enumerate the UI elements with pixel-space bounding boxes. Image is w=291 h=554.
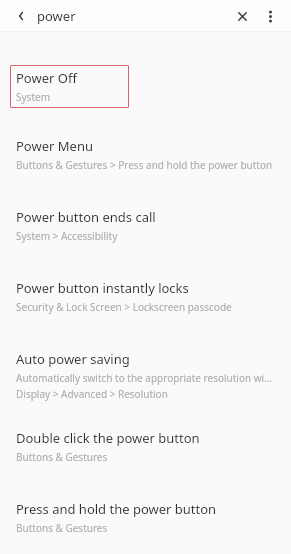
button[interactable]: Power button instantly locks [0,275,291,318]
staticText: Buttons & Gestures [16,450,108,464]
staticText: Power button instantly locks [16,279,189,297]
staticText: Double click the power button [16,429,200,447]
staticText: Auto power saving [16,350,130,368]
button[interactable]: Back [9,0,32,32]
staticText: Automatically switch to the appropriate … [16,371,275,385]
button[interactable]: Press and hold the power button [0,496,291,539]
staticText: Security & Lock Screen > Lockscreen pass… [16,300,232,314]
button[interactable]: Power Off [10,65,129,108]
button[interactable]: Power Menu [0,133,291,176]
staticText: Display > Advanced > Resolution [16,387,168,401]
button[interactable]: Double click the power button [0,425,291,468]
staticText: System > Accessibility [16,229,118,243]
staticText: Buttons & Gestures > Press and hold the … [16,158,273,172]
staticText: Buttons & Gestures [16,521,108,535]
staticText: Power Off [16,69,77,87]
button[interactable]: Power button ends call [0,204,291,247]
staticText: power [37,7,76,25]
button[interactable]: Clear search [229,0,255,32]
button[interactable]: Auto power saving [0,346,291,405]
staticText: System [16,90,50,104]
staticText: Power Menu [16,137,93,155]
staticText: Power button ends call [16,208,156,226]
staticText: Press and hold the power button [16,500,217,518]
button[interactable]: More options [258,0,283,32]
